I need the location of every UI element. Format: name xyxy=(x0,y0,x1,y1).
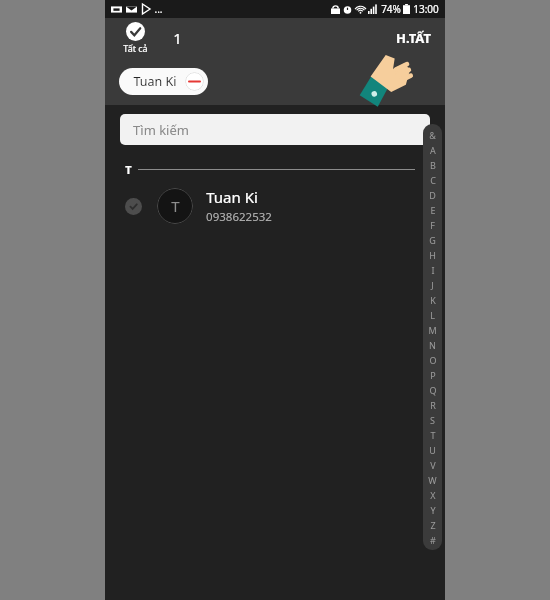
button[interactable]: Tất cả - select all xyxy=(123,22,148,54)
staticText: T xyxy=(171,196,180,216)
staticText: I xyxy=(431,264,435,276)
button[interactable]: Alphabet index xyxy=(423,124,442,550)
button[interactable]: Remove Tuan Ki xyxy=(185,72,204,91)
staticText: & xyxy=(429,129,436,141)
staticText: Y xyxy=(430,504,436,516)
staticText: Z xyxy=(430,519,436,531)
staticText: P xyxy=(430,369,436,381)
staticText: Tất cả xyxy=(123,42,148,54)
staticText: 74% xyxy=(381,2,401,16)
staticText: W xyxy=(428,474,437,486)
staticText: 1 xyxy=(173,28,182,48)
staticText: G xyxy=(429,234,436,246)
staticText: X xyxy=(430,489,436,501)
staticText: L xyxy=(430,309,435,321)
staticText: T xyxy=(125,162,132,177)
staticText: A xyxy=(430,144,436,156)
staticText: T xyxy=(430,429,436,441)
staticText: F xyxy=(430,219,435,231)
staticText: 0938622532 xyxy=(206,209,272,225)
staticText: J xyxy=(431,279,434,291)
button[interactable]: Tìm kiếm xyxy=(120,114,430,145)
staticText: ... xyxy=(154,2,163,16)
staticText: H.TẤT xyxy=(396,29,431,47)
staticText: U xyxy=(429,444,436,456)
staticText: Tuan Ki xyxy=(133,73,177,90)
button[interactable]: Tuan Ki xyxy=(119,68,208,95)
staticText: D xyxy=(429,189,436,201)
staticText: B xyxy=(430,159,436,171)
staticText: C xyxy=(430,174,436,186)
staticText: 13:00 xyxy=(413,2,439,16)
staticText: Q xyxy=(429,384,437,396)
staticText: M xyxy=(428,324,437,336)
staticText: K xyxy=(430,294,436,306)
staticText: Tìm kiếm xyxy=(133,121,189,139)
staticText: # xyxy=(430,534,436,546)
staticText: V xyxy=(430,459,436,471)
staticText: E xyxy=(430,204,436,216)
staticText: S xyxy=(430,414,435,426)
staticText: Tuan Ki xyxy=(206,187,258,207)
staticText: R xyxy=(430,399,436,411)
staticText: N xyxy=(429,339,436,351)
staticText: H xyxy=(429,249,436,261)
button[interactable]: T xyxy=(105,177,445,235)
button[interactable]: H.TẤT xyxy=(394,25,433,51)
staticText: O xyxy=(429,354,437,366)
